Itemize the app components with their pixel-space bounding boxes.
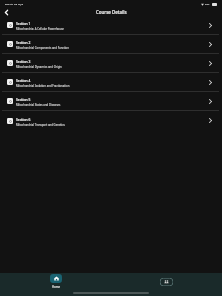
button[interactable]: Section 4 (0, 73, 222, 92)
staticText: Section 1 (16, 21, 31, 25)
button[interactable]: Back (2, 8, 11, 16)
staticText: Section 6 (16, 117, 31, 121)
staticText: Course Details (96, 9, 127, 15)
button[interactable]: Home (0, 273, 111, 290)
staticText: Section 5 (16, 97, 31, 101)
staticText: 8:09 AM Sat 12 Jul (5, 3, 23, 6)
staticText: 94% (205, 3, 210, 6)
staticText: Mitochondrial Transport and Genetics (16, 123, 65, 127)
staticText: Mitochondrial Dynamics and Origin (16, 65, 62, 69)
button[interactable]: Section 3 (0, 54, 222, 73)
button[interactable]: Section 5 (0, 92, 222, 111)
staticText: Home (52, 285, 60, 289)
staticText: Section 3 (16, 59, 31, 63)
staticText: Mitochondrial Components and Function (16, 46, 69, 50)
button[interactable]: Section 6 (0, 111, 222, 130)
button[interactable]: Account (111, 273, 222, 290)
staticText: Section 2 (16, 40, 31, 44)
staticText: Section 4 (16, 78, 31, 82)
staticText: Mitochondrial States and Diseases (16, 103, 61, 107)
button[interactable]: Section 1 (0, 16, 222, 35)
staticText: Mitochondrial Isolation and Fractionatio… (16, 84, 70, 88)
button[interactable]: Section 2 (0, 35, 222, 54)
staticText: Mitochondria: A Cellular Powerhouse (16, 27, 64, 31)
